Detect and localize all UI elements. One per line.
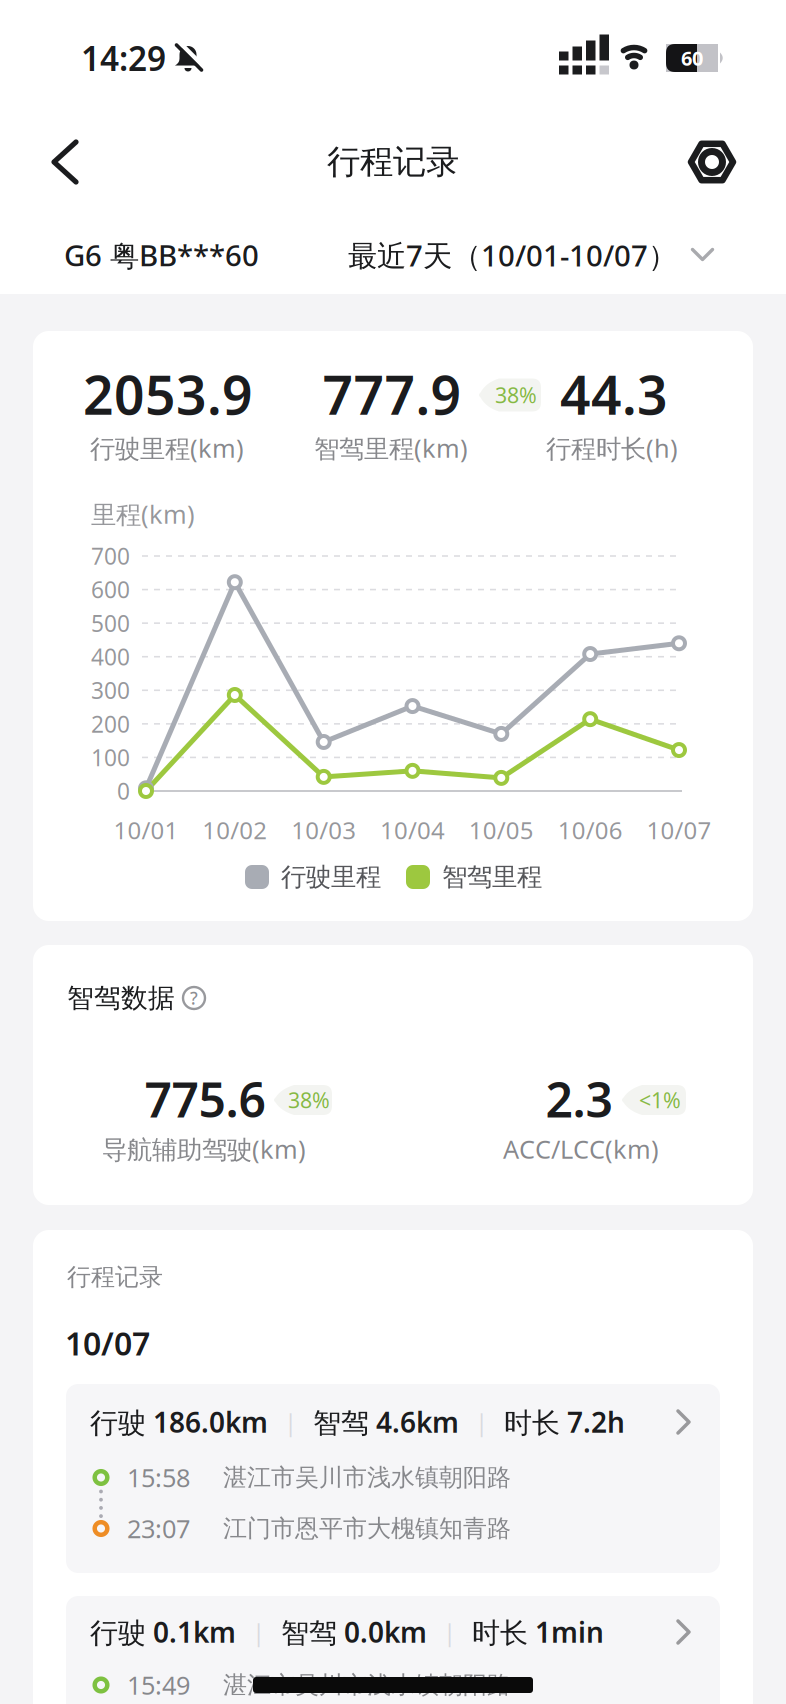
staticText: 2.3 (545, 1067, 612, 1131)
staticText: 44.3 (560, 359, 668, 429)
staticText: 智驾 4.6km (313, 1403, 459, 1441)
staticText: 时长 1min (472, 1613, 604, 1651)
staticText: 200 (91, 709, 130, 739)
staticText: 23:07 (127, 1512, 190, 1545)
button[interactable]: 最近7天（10/01-10/07） (294, 227, 714, 283)
staticText: 10/07 (65, 1322, 150, 1364)
button[interactable]: Back (47, 139, 81, 185)
staticText: 10/01 (113, 814, 178, 846)
staticText: 14:29 (81, 36, 166, 80)
staticText: 里程(km) (91, 497, 195, 531)
staticText: 最近7天（10/01-10/07） (348, 235, 677, 274)
button[interactable]: G6 粤BB***60 (64, 227, 344, 283)
staticText: 行驶里程(km) (90, 431, 244, 465)
staticText: 10/05 (469, 814, 534, 846)
staticText: 智驾里程(km) (314, 431, 468, 465)
staticText: | (475, 1406, 488, 1438)
staticText: 10/04 (380, 814, 445, 846)
button[interactable]: 智驾数据说明 (183, 987, 205, 1009)
staticText: | (252, 1616, 265, 1648)
staticText: 行驶 0.1km (90, 1613, 236, 1651)
staticText: G6 粤BB***60 (64, 235, 259, 274)
staticText: 777.9 (322, 359, 461, 429)
staticText: 智驾里程 (442, 861, 542, 892)
staticText: 38% (495, 381, 537, 409)
staticText: 湛江市吴川市浅水镇朝阳路 (223, 1463, 511, 1492)
staticText: | (443, 1616, 456, 1648)
button[interactable]: 行驶 186.0km (66, 1384, 720, 1573)
staticText: 0 (117, 776, 130, 806)
staticText: 10/02 (202, 814, 267, 846)
staticText: 行程记录 (67, 1262, 163, 1292)
staticText: 智驾数据 (67, 982, 175, 1014)
staticText: 行驶里程 (281, 861, 381, 892)
staticText: 行驶 186.0km (90, 1403, 268, 1441)
staticText: ACC/LCC(km) (503, 1132, 659, 1166)
staticText: 60 (681, 45, 703, 71)
staticText: 38% (288, 1086, 330, 1114)
button[interactable]: 行驶 0.1km (66, 1596, 720, 1704)
staticText: 江门市恩平市大槐镇知青路 (223, 1514, 511, 1543)
staticText: 600 (91, 574, 130, 605)
staticText: 智驾 0.0km (281, 1613, 427, 1651)
staticText: ? (190, 986, 198, 1009)
staticText: 导航辅助驾驶(km) (102, 1132, 306, 1166)
staticText: 行程记录 (327, 141, 459, 182)
staticText: 400 (91, 642, 130, 672)
staticText: 10/06 (558, 814, 623, 846)
staticText: 500 (91, 608, 130, 638)
staticText: 100 (91, 742, 130, 772)
staticText: 湛江市吴川市浅水镇朝阳路 (223, 1670, 511, 1700)
staticText: 15:58 (127, 1461, 190, 1494)
staticText: 15:49 (127, 1668, 190, 1702)
staticText: 2053.9 (83, 359, 253, 429)
staticText: 10/07 (646, 814, 711, 846)
staticText: 10/03 (291, 814, 356, 846)
button[interactable]: Settings (688, 138, 736, 186)
staticText: | (284, 1406, 297, 1438)
staticText: 行程时长(h) (546, 431, 678, 465)
staticText: <1% (639, 1086, 681, 1114)
staticText: 时长 7.2h (504, 1403, 625, 1441)
staticText: 700 (91, 541, 130, 571)
staticText: 775.6 (144, 1067, 265, 1131)
staticText: 300 (91, 675, 130, 705)
